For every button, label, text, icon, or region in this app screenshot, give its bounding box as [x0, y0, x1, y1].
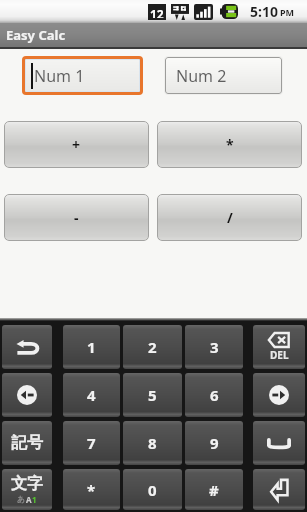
button[interactable]: * — [63, 469, 120, 510]
button[interactable]: / — [157, 194, 302, 241]
staticText: 1 — [87, 337, 96, 357]
button[interactable]: + — [4, 121, 149, 168]
staticText: 3 — [210, 337, 219, 357]
button[interactable]: Num 1 — [26, 60, 139, 91]
staticText: 2 — [148, 337, 157, 357]
button[interactable]: 文字 — [2, 469, 52, 510]
button[interactable]: undo — [2, 325, 52, 369]
staticText: 6 — [210, 385, 219, 405]
staticText: 4 — [87, 385, 96, 405]
staticText: Num 1 — [34, 65, 85, 87]
staticText: DEL — [270, 348, 289, 362]
button[interactable]: del — [253, 325, 305, 369]
staticText: / — [227, 208, 233, 227]
button[interactable]: Num 2 — [165, 57, 282, 94]
button[interactable]: 3 — [185, 325, 243, 369]
staticText: # — [209, 480, 219, 500]
staticText: * — [226, 135, 234, 154]
staticText: 文字 — [11, 474, 43, 494]
button[interactable]: 2 — [123, 325, 182, 369]
staticText: Num 2 — [176, 65, 227, 87]
button[interactable]: # — [185, 469, 243, 510]
staticText: - — [74, 208, 79, 227]
button[interactable]: right — [253, 373, 305, 417]
button[interactable]: 4 — [63, 373, 120, 417]
button[interactable]: 7 — [63, 421, 120, 465]
staticText: 8 — [148, 433, 157, 453]
button[interactable]: 8 — [123, 421, 182, 465]
button[interactable]: 記号 — [2, 421, 52, 465]
staticText: * — [87, 480, 96, 500]
staticText: 7 — [87, 433, 96, 453]
button[interactable]: enter — [253, 469, 305, 510]
staticText: 5 — [148, 385, 157, 405]
button[interactable]: - — [4, 194, 149, 241]
staticText: 0 — [148, 480, 157, 500]
staticText: PM — [280, 6, 295, 18]
staticText: Easy Calc — [6, 26, 66, 44]
staticText: 1 — [32, 494, 37, 505]
staticText: + — [72, 135, 81, 154]
staticText: 5:10 — [250, 2, 278, 21]
button[interactable]: * — [157, 121, 302, 168]
button[interactable]: 5 — [123, 373, 182, 417]
staticText: A — [26, 494, 32, 505]
button[interactable]: 6 — [185, 373, 243, 417]
staticText: 記号 — [11, 433, 43, 453]
button[interactable]: space — [253, 421, 305, 465]
staticText: 9 — [210, 433, 219, 453]
button[interactable]: left — [2, 373, 52, 417]
staticText: 12 — [150, 6, 164, 18]
button[interactable]: 0 — [123, 469, 182, 510]
button[interactable]: 1 — [63, 325, 120, 369]
button[interactable]: 9 — [185, 421, 243, 465]
staticText: あ — [17, 494, 26, 504]
